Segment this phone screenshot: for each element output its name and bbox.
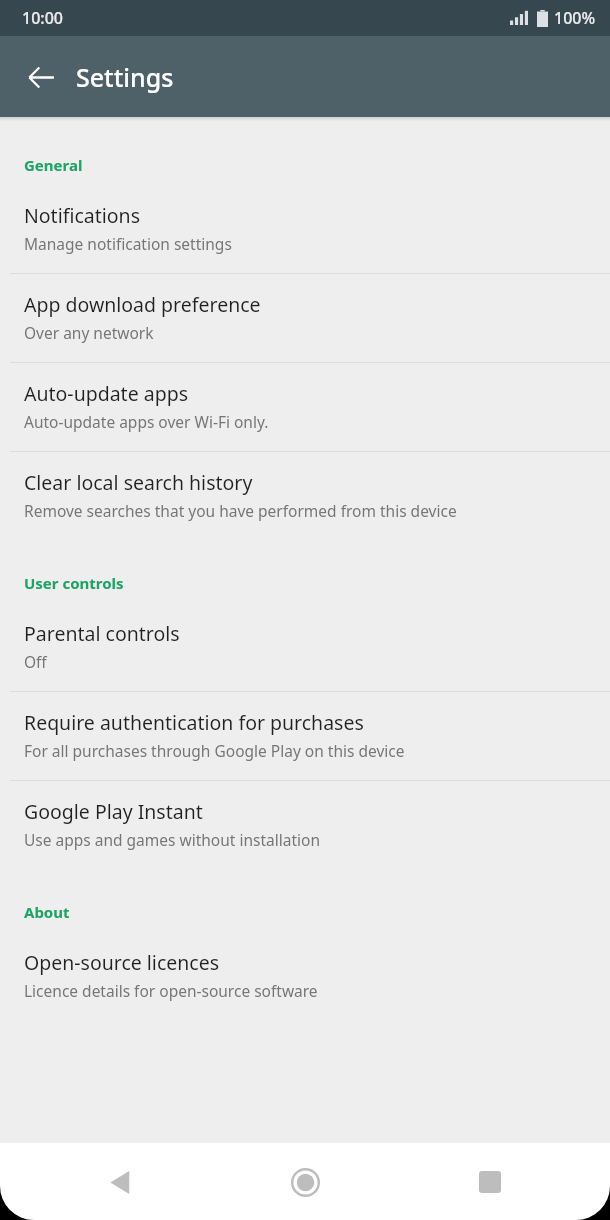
staticText: Over any network bbox=[24, 322, 154, 343]
button[interactable]: Parental controls bbox=[0, 603, 610, 691]
staticText: 10:00 bbox=[22, 7, 63, 29]
staticText: Off bbox=[24, 651, 47, 672]
button[interactable]: Back bbox=[12, 48, 70, 106]
staticText: User controls bbox=[24, 573, 124, 593]
button[interactable]: App download preference bbox=[0, 274, 610, 362]
button[interactable]: Auto-update apps bbox=[0, 363, 610, 451]
staticText: Clear local search history bbox=[24, 469, 253, 496]
button[interactable]: Clear local search history bbox=[0, 452, 610, 540]
button[interactable]: Require authentication for purchases bbox=[0, 692, 610, 780]
button[interactable]: Home bbox=[275, 1152, 335, 1212]
staticText: Use apps and games without installation bbox=[24, 829, 320, 850]
staticText: Open-source licences bbox=[24, 949, 220, 976]
staticText: Remove searches that you have performed … bbox=[24, 500, 457, 521]
staticText: Notifications bbox=[24, 202, 140, 229]
staticText: 100% bbox=[554, 7, 596, 29]
button[interactable]: Notifications bbox=[0, 185, 610, 273]
button[interactable]: Open-source licences bbox=[0, 932, 610, 1020]
staticText: For all purchases through Google Play on… bbox=[24, 740, 405, 761]
staticText: Manage notification settings bbox=[24, 233, 232, 254]
staticText: Parental controls bbox=[24, 620, 180, 647]
staticText: App download preference bbox=[24, 291, 261, 318]
staticText: Auto-update apps bbox=[24, 380, 188, 407]
staticText: Require authentication for purchases bbox=[24, 709, 364, 736]
button[interactable]: Back bbox=[90, 1152, 150, 1212]
staticText: About bbox=[24, 902, 70, 922]
staticText: Settings bbox=[76, 60, 174, 94]
staticText: Licence details for open-source software bbox=[24, 980, 318, 1001]
staticText: Auto-update apps over Wi-Fi only. bbox=[24, 411, 269, 432]
button[interactable]: Recent apps bbox=[460, 1152, 520, 1212]
button[interactable]: Google Play Instant bbox=[0, 781, 610, 869]
staticText: General bbox=[24, 155, 83, 175]
staticText: Google Play Instant bbox=[24, 798, 203, 825]
